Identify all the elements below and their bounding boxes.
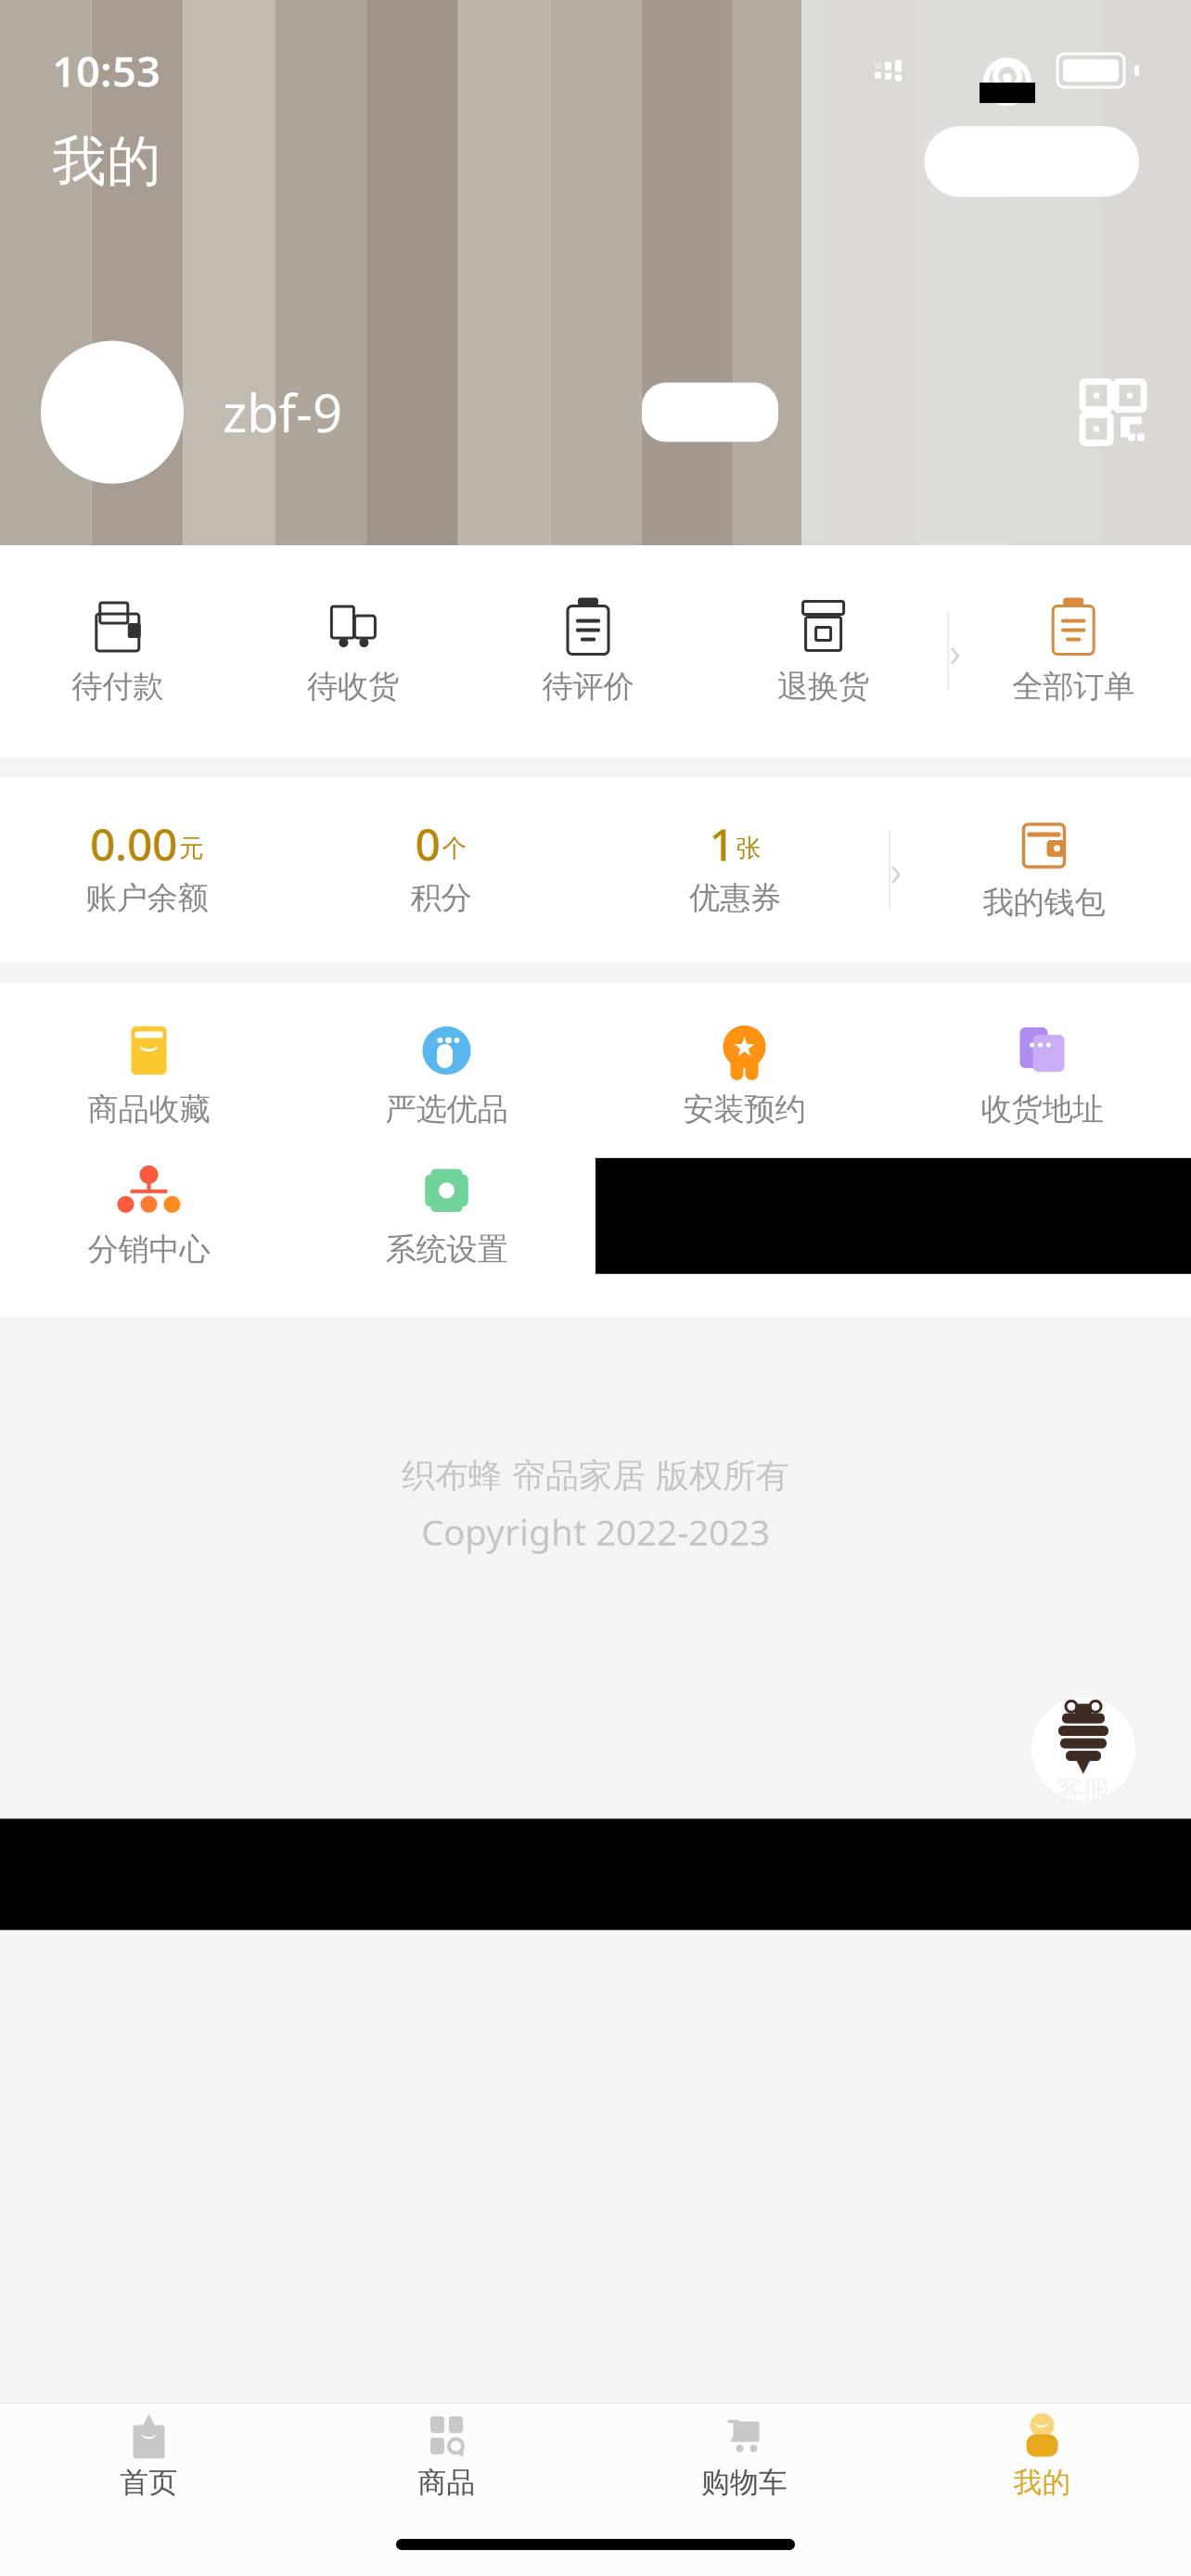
staticText: 客服 xyxy=(1057,1773,1110,1807)
button[interactable]: 0.00 xyxy=(0,823,294,917)
button[interactable]: 全部订单 xyxy=(956,593,1191,709)
staticText: 退换货 xyxy=(777,668,869,706)
staticText: › xyxy=(949,624,960,679)
staticText: 织布蜂 帘品家居 版权所有 xyxy=(402,1456,789,1497)
staticText: 元 xyxy=(179,833,204,864)
staticText: 商品 xyxy=(418,2465,475,2500)
button[interactable]: 待付款 xyxy=(0,593,235,709)
button[interactable]: ⌣ xyxy=(0,1018,298,1134)
button[interactable]: 0 xyxy=(294,823,588,917)
staticText: ⌣ xyxy=(1035,2413,1050,2435)
button[interactable]: Avatar xyxy=(43,337,182,488)
staticText: 首页 xyxy=(120,2465,178,2500)
button[interactable]: 严选优品 xyxy=(298,1018,595,1134)
button[interactable]: 系统设置 xyxy=(298,1158,595,1274)
button[interactable]: ★ xyxy=(595,1018,893,1134)
staticText: 安装预约 xyxy=(683,1090,806,1128)
staticText: 收货地址 xyxy=(981,1090,1103,1128)
staticText: ▲ xyxy=(136,2405,161,2442)
staticText: 我的 xyxy=(1013,2465,1071,2500)
staticText: ⌣ xyxy=(141,2423,157,2447)
button[interactable]: 分销中心 xyxy=(0,1158,298,1274)
button[interactable]: Scan QR code xyxy=(1078,377,1148,448)
button[interactable]: 商品 xyxy=(298,2404,595,2500)
staticText: 优惠券 xyxy=(689,879,781,917)
button[interactable]: ▼ xyxy=(1028,1680,1139,1819)
staticText: Copyright 2022-2023 xyxy=(421,1508,770,1555)
staticText: 待收货 xyxy=(307,668,399,706)
staticText: ▱ xyxy=(730,2411,759,2453)
button[interactable]: 1 xyxy=(588,823,882,917)
staticText: 商品收藏 xyxy=(88,1090,210,1128)
button[interactable]: 收货地址 xyxy=(893,1018,1191,1134)
staticText: S xyxy=(81,337,144,488)
button[interactable]: 待评价 xyxy=(470,593,706,709)
staticText: 账户余额 xyxy=(86,879,208,917)
staticText: 严选优品 xyxy=(385,1090,508,1128)
staticText: 张 xyxy=(736,833,761,864)
staticText: 10:53 xyxy=(52,43,160,98)
staticText: 0.00 xyxy=(90,814,177,873)
button[interactable]: 待收货 xyxy=(235,593,470,709)
staticText: 我的钱包 xyxy=(983,884,1105,922)
button[interactable]: 我的钱包 xyxy=(897,819,1191,922)
button[interactable]: More xyxy=(924,126,1036,197)
staticText: 分销中心 xyxy=(88,1230,210,1268)
staticText: 积分 xyxy=(410,879,472,917)
staticText: zbf-9 xyxy=(223,378,342,447)
button[interactable]: 退换货 xyxy=(706,593,941,709)
staticText: ▼ xyxy=(1073,1746,1094,1777)
staticText: 0 xyxy=(415,814,440,873)
staticText: 我的 xyxy=(52,128,161,195)
staticText: › xyxy=(890,842,902,898)
staticText: 购物车 xyxy=(701,2465,788,2500)
staticText: 全部订单 xyxy=(1012,668,1135,706)
button[interactable]: ▱ xyxy=(595,2404,893,2500)
staticText: 系统设置 xyxy=(385,1230,508,1268)
staticText: 1 xyxy=(709,814,734,873)
staticText: 待付款 xyxy=(72,668,164,706)
button[interactable]: Close mini program xyxy=(1037,126,1139,197)
button[interactable]: ⌣ xyxy=(893,2404,1191,2500)
staticText: ⌣ xyxy=(138,1031,160,1062)
staticText: ★ xyxy=(732,1031,756,1062)
staticText: 个 xyxy=(442,833,467,864)
button[interactable]: ▲ xyxy=(0,2404,298,2500)
staticText: 待评价 xyxy=(542,668,634,706)
